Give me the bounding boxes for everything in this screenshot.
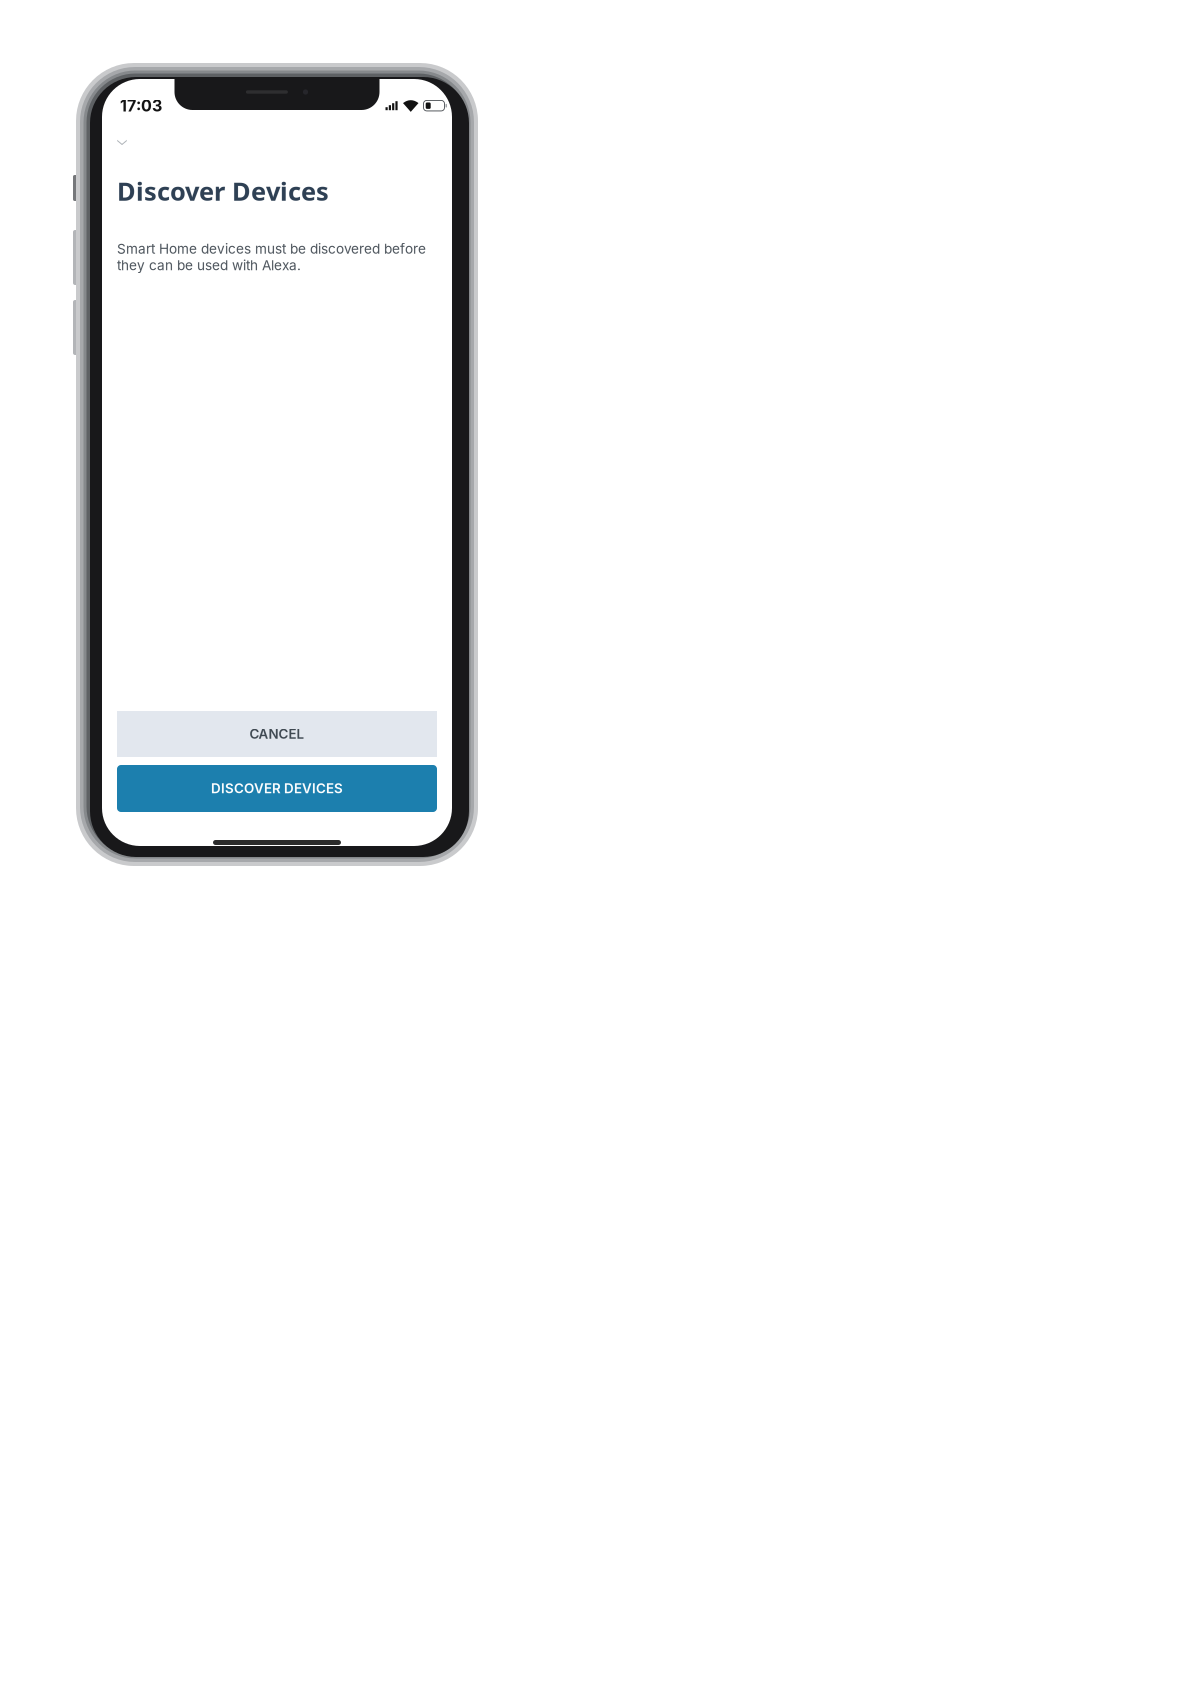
button[interactable]: DISCOVER DEVICES <box>117 765 437 812</box>
staticText: 17:03 <box>120 96 162 115</box>
staticText: CANCEL <box>249 726 304 742</box>
staticText: Smart Home devices must be discovered be… <box>117 241 426 273</box>
button[interactable]: CANCEL <box>117 711 437 757</box>
staticText: Discover Devices <box>117 174 329 208</box>
staticText: DISCOVER DEVICES <box>211 780 343 796</box>
button[interactable]: Dismiss <box>107 127 137 157</box>
